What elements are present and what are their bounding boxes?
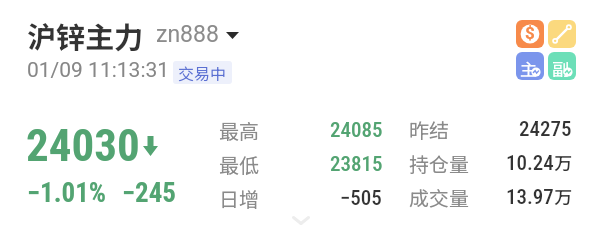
- button[interactable]: 沪锌主力: [22, 12, 247, 50]
- staticText: 24030: [26, 119, 140, 172]
- staticText: 24275: [519, 117, 572, 142]
- staticText: −1.01%: [27, 177, 107, 209]
- button[interactable]: Main indicator: [516, 52, 544, 80]
- staticText: 沪锌主力: [27, 14, 144, 52]
- button[interactable]: 最高: [219, 113, 383, 147]
- staticText: 昨结: [409, 115, 449, 144]
- staticText: −505: [340, 186, 382, 211]
- button[interactable]: 最低: [219, 147, 383, 181]
- staticText: 01/09 11:13:31: [27, 58, 170, 83]
- staticText: 最高: [219, 116, 259, 145]
- staticText: zn888: [156, 21, 219, 48]
- button[interactable]: 昨结: [409, 112, 572, 146]
- staticText: 持仓量: [409, 149, 469, 178]
- button[interactable]: Expand: [292, 216, 310, 225]
- button[interactable]: 交易中: [173, 61, 232, 84]
- staticText: 副: [552, 56, 569, 80]
- staticText: 23815: [330, 152, 383, 177]
- staticText: 交易中: [178, 61, 227, 84]
- staticText: 主: [520, 56, 537, 80]
- button[interactable]: Trend line: [548, 20, 576, 48]
- button[interactable]: 成交量: [409, 180, 572, 214]
- other: Select contract: [226, 32, 239, 39]
- staticText: 成交量: [409, 183, 469, 212]
- button[interactable]: 日增: [219, 181, 382, 215]
- button[interactable]: Funds: [516, 20, 544, 48]
- staticText: 13.97: [506, 185, 554, 210]
- button[interactable]: Sub indicator: [548, 52, 576, 80]
- staticText: 万: [554, 183, 572, 209]
- staticText: 最低: [219, 150, 259, 179]
- staticText: 24085: [330, 118, 383, 143]
- staticText: $: [525, 23, 535, 43]
- staticText: −245: [122, 177, 176, 209]
- staticText: 10.24: [506, 151, 554, 176]
- staticText: 日增: [219, 184, 259, 213]
- staticText: 万: [554, 149, 572, 175]
- button[interactable]: 持仓量: [409, 146, 572, 180]
